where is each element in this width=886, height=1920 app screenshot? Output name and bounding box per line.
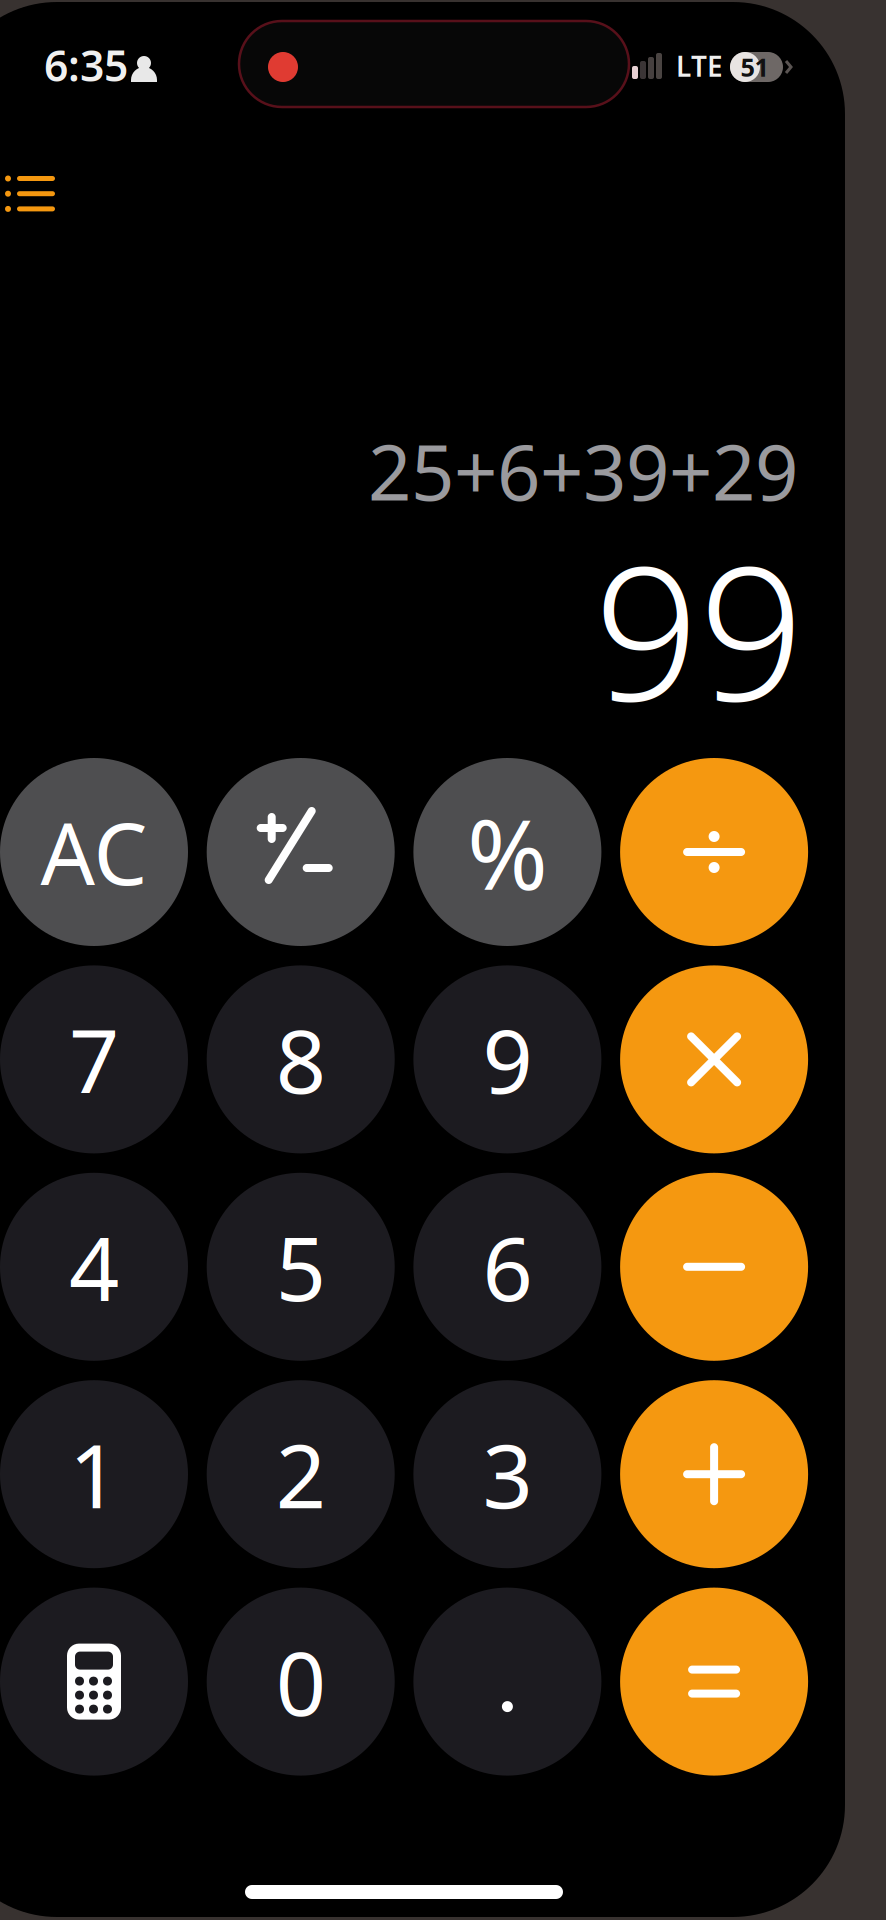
button[interactable]: 6 (413, 1173, 601, 1361)
button[interactable]: Multiply (620, 965, 808, 1153)
staticText: 3 (482, 1416, 532, 1533)
button[interactable]: 7 (0, 965, 188, 1153)
button[interactable]: Subtract (620, 1173, 808, 1361)
button[interactable]: 2 (207, 1380, 395, 1568)
staticText: 9 (482, 1001, 532, 1118)
button[interactable]: History (0, 160, 94, 244)
button[interactable]: 5 (207, 1173, 395, 1361)
staticText: 6 (482, 1208, 532, 1325)
button[interactable]: AC (0, 758, 188, 946)
staticText: 0 (276, 1623, 326, 1740)
button[interactable]: 0 (207, 1588, 395, 1776)
button[interactable]: % (413, 758, 601, 946)
button[interactable]: Calculator modes (0, 1588, 188, 1776)
button[interactable]: 1 (0, 1380, 188, 1568)
button[interactable]: 4 (0, 1173, 188, 1361)
button[interactable]: Add (620, 1380, 808, 1568)
staticText: 51 (740, 50, 768, 84)
staticText: 99 (594, 507, 804, 751)
button[interactable]: Decimal point (413, 1588, 601, 1776)
staticText: 6:35 (44, 37, 128, 93)
staticText: 7 (69, 1001, 119, 1118)
button[interactable]: Divide (620, 758, 808, 946)
button[interactable]: 3 (413, 1380, 601, 1568)
button[interactable]: Equals (620, 1588, 808, 1776)
button[interactable]: 9 (413, 965, 601, 1153)
staticText: LTE (676, 47, 723, 85)
button[interactable]: Toggle sign (207, 758, 395, 946)
button[interactable]: 8 (207, 965, 395, 1153)
staticText: AC (40, 795, 147, 909)
staticText: 8 (276, 1001, 326, 1118)
staticText: % (467, 787, 548, 917)
staticText: 1 (69, 1416, 119, 1533)
staticText: 2 (276, 1416, 326, 1533)
staticText: 25+6+39+29 (368, 420, 798, 521)
staticText: 5 (276, 1208, 326, 1325)
staticText: 4 (69, 1208, 119, 1325)
